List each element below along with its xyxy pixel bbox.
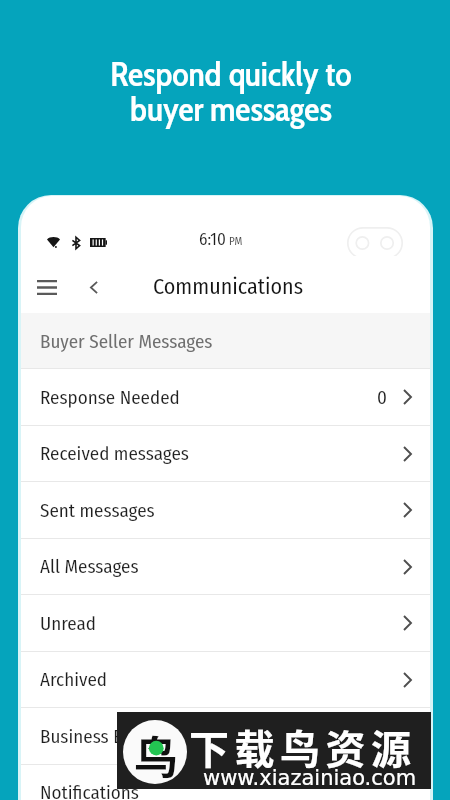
- staticText: buyer messages: [130, 88, 332, 129]
- staticText: 鸟: [134, 723, 178, 784]
- staticText: Buyer Seller Messages: [40, 330, 213, 353]
- staticText: Respond quickly to: [110, 53, 352, 94]
- button[interactable]: Menu: [27, 267, 67, 307]
- staticText: 6:10: [199, 229, 226, 249]
- button[interactable]: Unread: [21, 595, 430, 651]
- staticText: 0: [377, 386, 387, 409]
- staticText: Communications: [153, 273, 304, 299]
- staticText: Unread: [40, 612, 96, 635]
- staticText: Sent messages: [40, 499, 155, 522]
- button[interactable]: Notifications: [21, 765, 430, 800]
- button[interactable]: Back: [74, 267, 114, 307]
- staticText: Notifications: [40, 781, 139, 800]
- staticText: Response Needed: [40, 386, 180, 409]
- staticText: Received messages: [40, 442, 189, 465]
- button[interactable]: Received messages: [21, 426, 430, 481]
- staticText: 下载鸟资源: [189, 718, 417, 776]
- button[interactable]: Archived: [21, 652, 430, 707]
- button[interactable]: All Messages: [21, 539, 430, 594]
- staticText: All Messages: [40, 555, 139, 578]
- staticText: Archived: [40, 668, 107, 691]
- button[interactable]: Sent messages: [21, 482, 430, 538]
- staticText: www.xiazainiao.com: [203, 766, 417, 790]
- button[interactable]: Business B: [21, 708, 430, 764]
- staticText: Business B: [40, 725, 124, 748]
- staticText: PM: [229, 235, 243, 248]
- button[interactable]: Response Needed: [21, 369, 430, 425]
